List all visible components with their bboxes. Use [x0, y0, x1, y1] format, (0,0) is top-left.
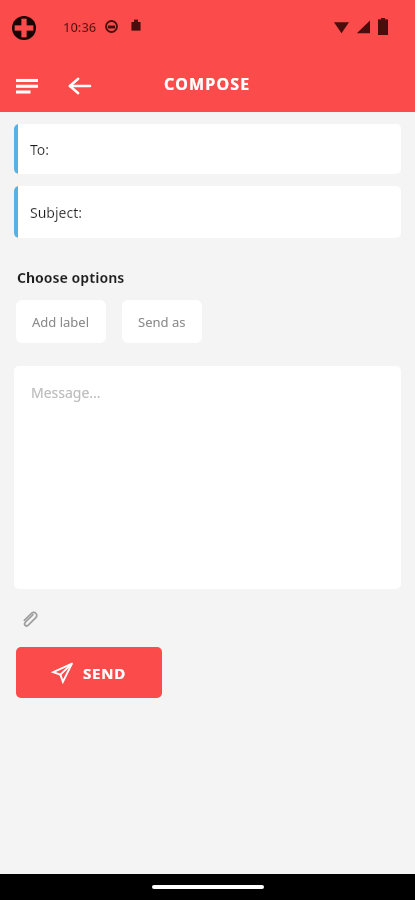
button[interactable]: Subject: — [14, 186, 401, 238]
button[interactable]: SEND — [16, 647, 162, 698]
staticText: To: — [30, 140, 50, 159]
button[interactable]: Send as — [122, 300, 202, 343]
staticText: SEND — [83, 663, 127, 683]
staticText: Message... — [31, 383, 101, 402]
staticText: Subject: — [30, 203, 82, 222]
staticText: 10:36 — [63, 18, 97, 36]
staticText: Send as — [138, 313, 186, 331]
button[interactable]: Attach file — [14, 604, 44, 634]
button[interactable]: Add label — [16, 300, 106, 343]
button[interactable]: Back — [63, 69, 97, 103]
button[interactable]: Menu — [10, 69, 44, 103]
staticText: Choose options — [17, 268, 125, 287]
staticText: COMPOSE — [164, 73, 251, 95]
staticText: Add label — [32, 313, 90, 331]
button[interactable]: To: — [14, 124, 401, 174]
